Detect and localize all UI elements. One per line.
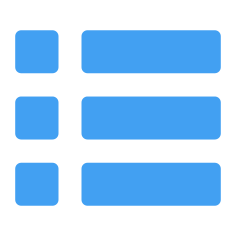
button[interactable]: List item 3 (15, 163, 221, 206)
button[interactable]: List item 2 (15, 96, 221, 139)
button[interactable]: List item 1 (15, 30, 221, 73)
